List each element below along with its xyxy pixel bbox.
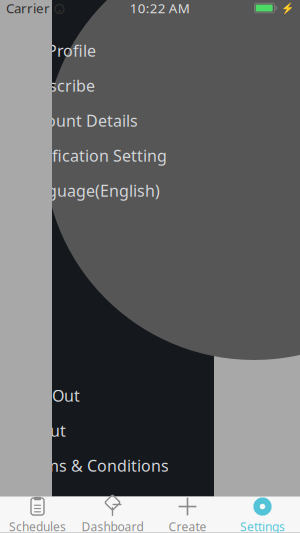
button[interactable]: Subscribe bbox=[0, 68, 214, 103]
staticText: My Profile bbox=[20, 40, 96, 61]
staticText: Account Details bbox=[20, 110, 138, 131]
staticText: 10:22 AM bbox=[130, 0, 190, 17]
staticText: Terms & Conditions bbox=[20, 455, 169, 476]
button[interactable]: Schedules bbox=[0, 497, 75, 533]
staticText: ⚡ bbox=[281, 2, 294, 14]
button[interactable]: My Profile bbox=[0, 33, 214, 68]
staticText: Carrier bbox=[6, 0, 50, 17]
staticText: About bbox=[20, 420, 66, 441]
button[interactable]: Settings bbox=[225, 497, 300, 533]
staticText: Create bbox=[168, 518, 206, 533]
button[interactable]: Notification Setting bbox=[0, 138, 214, 173]
staticText: Log Out bbox=[20, 385, 80, 406]
button[interactable]: About bbox=[0, 413, 214, 448]
button[interactable]: Terms & Conditions bbox=[0, 448, 214, 483]
staticText: Subscribe bbox=[20, 75, 95, 96]
button[interactable]: Account Details bbox=[0, 103, 214, 138]
staticText: Dashboard bbox=[81, 518, 143, 533]
button[interactable]: Log Out bbox=[0, 378, 214, 413]
button[interactable]: Create bbox=[150, 497, 225, 533]
staticText: Settings bbox=[240, 518, 285, 533]
staticText: Language(English) bbox=[20, 180, 160, 201]
staticText: Notification Setting bbox=[20, 145, 167, 166]
button[interactable]: Dashboard bbox=[75, 497, 150, 533]
button[interactable]: Language(English) bbox=[0, 173, 214, 208]
staticText: Schedules bbox=[9, 518, 66, 533]
